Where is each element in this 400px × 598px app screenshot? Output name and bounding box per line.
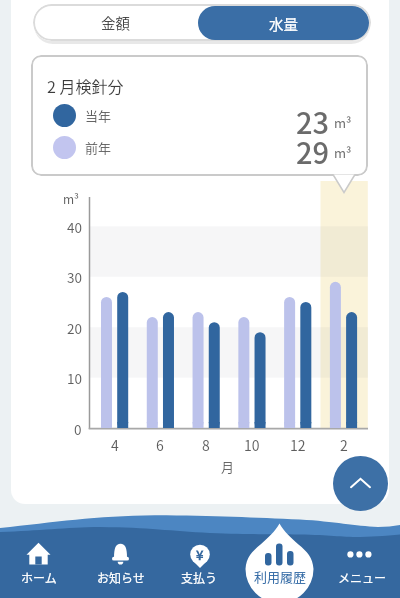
staticText: 2 月検針分 (47, 74, 124, 97)
staticText: 10 (67, 368, 82, 387)
staticText: 金額 (101, 12, 130, 33)
staticText: 8 (202, 435, 210, 453)
button[interactable] (333, 456, 388, 511)
button[interactable]: 水量 (198, 6, 369, 40)
staticText: 40 (67, 217, 82, 236)
staticText: 月 (221, 457, 235, 475)
button[interactable] (1, 535, 77, 598)
staticText: 30 (67, 267, 82, 286)
staticText: ¥ (196, 545, 204, 564)
button[interactable]: 金額 (33, 4, 198, 41)
staticText: 当年 (85, 106, 112, 125)
button[interactable] (83, 535, 159, 598)
staticText: m³ (63, 190, 80, 207)
staticText: 利用履歴 (254, 567, 307, 585)
staticText: m³ (334, 113, 352, 132)
staticText: 23 (296, 100, 330, 136)
staticText: 水量 (269, 13, 298, 34)
staticText: お知らせ (97, 569, 145, 586)
button[interactable] (242, 535, 318, 598)
staticText: m³ (334, 143, 352, 162)
staticText: 2 (340, 435, 348, 453)
staticText: 6 (156, 435, 164, 453)
staticText: 29 (296, 130, 330, 166)
staticText: 4 (111, 435, 119, 453)
button[interactable] (161, 535, 237, 598)
button[interactable] (324, 535, 400, 598)
staticText: 12 (290, 435, 306, 453)
staticText: ホーム (21, 569, 57, 586)
staticText: 支払う (181, 569, 218, 586)
staticText: メニュー (338, 569, 387, 586)
staticText: 0 (74, 419, 82, 438)
staticText: 20 (67, 318, 82, 337)
staticText: 10 (244, 435, 260, 453)
staticText: 前年 (85, 138, 112, 157)
